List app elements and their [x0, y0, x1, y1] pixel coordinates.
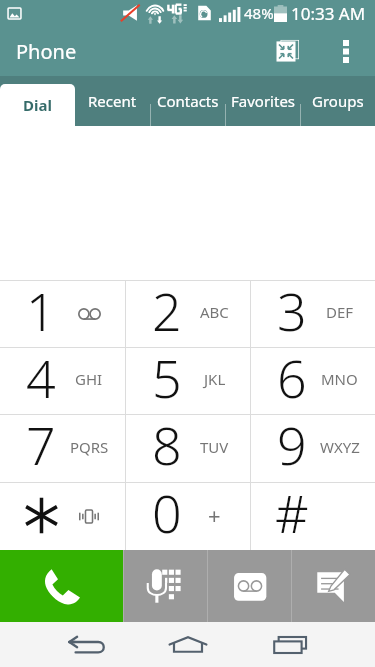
staticText: 9 [277, 409, 307, 476]
staticText: Recent [88, 91, 137, 111]
button[interactable]: 8 [126, 415, 250, 482]
button[interactable]: Recent [75, 76, 150, 126]
staticText: DEF [326, 302, 354, 322]
button[interactable]: 7 [0, 415, 125, 482]
button[interactable]: Shrink view [263, 27, 311, 75]
staticText: Favorites [231, 91, 296, 111]
button[interactable]: 4 [0, 348, 125, 414]
staticText: PQRS [70, 437, 109, 457]
staticText: 5 [152, 342, 182, 408]
button[interactable]: Recents [266, 622, 314, 667]
staticText: 7 [26, 409, 56, 476]
button[interactable]: 5 [126, 348, 250, 414]
staticText: TUV [200, 437, 229, 457]
button[interactable]: Contacts [151, 76, 225, 126]
staticText: 48% [244, 3, 274, 23]
button[interactable]: 6 [251, 348, 375, 414]
button[interactable]: 1 [0, 281, 125, 347]
button[interactable]: Voicemail [208, 550, 291, 622]
staticText: 4 [26, 342, 56, 408]
button[interactable]: Groups [301, 76, 375, 126]
button[interactable]: # [251, 483, 375, 550]
staticText: 0 [152, 477, 182, 544]
button[interactable] [0, 483, 125, 550]
staticText: 6 [277, 342, 307, 408]
button[interactable]: Back [62, 622, 110, 667]
staticText: JKL [204, 369, 226, 389]
button[interactable]: 2 [126, 281, 250, 347]
staticText: # [275, 477, 309, 544]
staticText: Contacts [157, 91, 219, 111]
button[interactable]: Favorites [226, 76, 300, 126]
staticText: 3 [277, 275, 307, 341]
staticText: 1 [26, 275, 56, 341]
button[interactable]: Home [164, 622, 212, 667]
button[interactable]: 9 [251, 415, 375, 482]
button[interactable]: Call [0, 550, 123, 622]
staticText: + [208, 500, 221, 530]
staticText: 2 [152, 275, 182, 341]
staticText: GHI [75, 369, 103, 389]
staticText: WXYZ [320, 437, 360, 457]
button[interactable]: Voice dial [124, 550, 207, 622]
button[interactable]: Message [292, 550, 375, 622]
staticText: 8 [152, 409, 182, 476]
staticText: Dial [23, 95, 52, 115]
staticText: Groups [312, 91, 364, 111]
staticText: ABC [200, 302, 229, 322]
staticText: MNO [321, 369, 358, 389]
button[interactable]: Dial [0, 84, 75, 126]
staticText: 10:33 AM [291, 2, 366, 25]
button[interactable]: 3 [251, 281, 375, 347]
button[interactable]: 0 [126, 483, 250, 550]
button[interactable]: More options [322, 27, 370, 75]
staticText: Phone [16, 38, 77, 65]
